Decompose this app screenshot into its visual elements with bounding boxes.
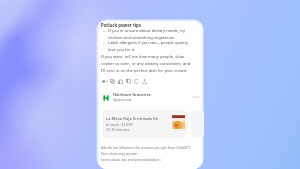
staticText: In stock · $14.99 xyxy=(106,122,133,127)
staticText: La Mesa Roja Enchilada Kit xyxy=(106,116,159,122)
staticText: – xyxy=(103,40,106,46)
button[interactable]: Heirloom Groceries xyxy=(101,92,200,102)
button[interactable] xyxy=(191,110,204,138)
button[interactable]: Regenerate xyxy=(132,77,140,85)
staticText: If you want, tell me how many people, sl… xyxy=(101,54,194,73)
staticText: Sponsored xyxy=(113,97,132,102)
staticText: Heirloom Groceries xyxy=(113,92,151,97)
staticText: – xyxy=(103,28,106,34)
staticText: 25-35 minutes xyxy=(106,127,130,132)
staticText: Potluck power tips xyxy=(101,22,141,28)
button[interactable]: Good response xyxy=(116,77,124,85)
button[interactable]: Copy xyxy=(108,77,116,85)
button[interactable]: Bad response xyxy=(124,77,132,85)
staticText: If you're unsure about dietary needs, tr… xyxy=(108,28,194,40)
staticText: Ads do not influence the answers you get… xyxy=(101,145,193,156)
button[interactable]: Share xyxy=(140,77,148,85)
button[interactable]: La Mesa Roja Enchilada Kit xyxy=(102,110,188,138)
staticText: Label allergens if you can—people quietl… xyxy=(108,40,194,52)
button[interactable]: Read aloud xyxy=(100,77,108,85)
button[interactable]: More options xyxy=(192,93,200,101)
button[interactable]: Learn about ads and personalization › xyxy=(101,157,162,162)
